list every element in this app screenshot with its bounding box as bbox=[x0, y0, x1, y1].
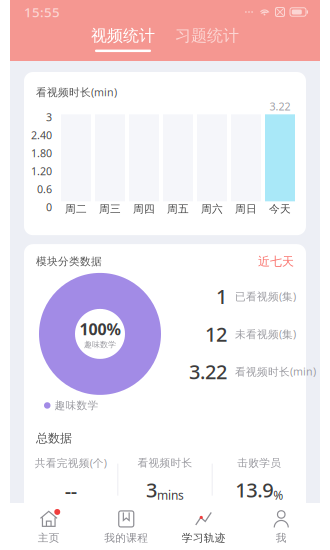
staticText: 看视频时长(min) bbox=[36, 85, 117, 99]
staticText: 周六 bbox=[201, 202, 223, 215]
staticText: 周四 bbox=[133, 202, 155, 215]
staticText: 共看完视频(个) bbox=[35, 456, 107, 470]
staticText: 模块分类数据 bbox=[36, 255, 102, 268]
button[interactable]: 近七天 bbox=[258, 254, 294, 269]
staticText: % bbox=[273, 487, 283, 503]
staticText: 近七天 bbox=[258, 254, 294, 269]
staticText: 主页 bbox=[38, 531, 60, 544]
staticText: 1.20 bbox=[31, 164, 52, 178]
staticText: 1 bbox=[216, 283, 227, 310]
staticText: 趣味数学 bbox=[84, 340, 116, 349]
staticText: 13.9 bbox=[235, 476, 273, 503]
staticText: 看视频时长(min) bbox=[235, 364, 316, 379]
staticText: 今天 bbox=[269, 202, 291, 215]
staticText: 击败学员 bbox=[237, 456, 281, 469]
staticText: 未看视频(集) bbox=[235, 327, 296, 341]
staticText: 1.80 bbox=[31, 146, 52, 160]
staticText: 12 bbox=[205, 321, 227, 347]
staticText: 周日 bbox=[235, 202, 257, 215]
staticText: 15:55 bbox=[24, 3, 60, 21]
button[interactable]: 学习轨迹 bbox=[165, 502, 242, 550]
staticText: 习题统计 bbox=[175, 26, 239, 46]
staticText: 看视频时长 bbox=[137, 456, 192, 469]
staticText: 周二 bbox=[65, 202, 87, 215]
staticText: 我 bbox=[276, 531, 287, 544]
button[interactable]: 主页 bbox=[10, 502, 87, 550]
button[interactable]: 习题统计 bbox=[175, 26, 239, 52]
staticText: 2.40 bbox=[31, 128, 52, 142]
staticText: 视频统计 bbox=[91, 26, 155, 46]
staticText: -- bbox=[65, 477, 77, 503]
staticText: 总数据 bbox=[36, 431, 72, 446]
button[interactable]: 视频统计 bbox=[91, 26, 155, 52]
staticText: 学习轨迹 bbox=[182, 531, 226, 544]
staticText: 周三 bbox=[99, 202, 121, 215]
button[interactable]: 我的课程 bbox=[87, 502, 165, 550]
staticText: 0 bbox=[46, 200, 52, 214]
staticText: 周五 bbox=[167, 202, 189, 215]
staticText: 趣味数学 bbox=[54, 399, 98, 412]
button[interactable]: 我 bbox=[242, 502, 320, 550]
staticText: 3.22 bbox=[189, 358, 227, 385]
staticText: 3.22 bbox=[269, 99, 290, 113]
staticText: 3 bbox=[46, 110, 52, 124]
staticText: 3 bbox=[146, 476, 157, 503]
staticText: 0.6 bbox=[37, 182, 52, 196]
staticText: 100% bbox=[79, 318, 120, 340]
staticText: mins bbox=[157, 487, 184, 503]
staticText: 我的课程 bbox=[104, 531, 148, 544]
staticText: 已看视频(集) bbox=[235, 289, 296, 303]
